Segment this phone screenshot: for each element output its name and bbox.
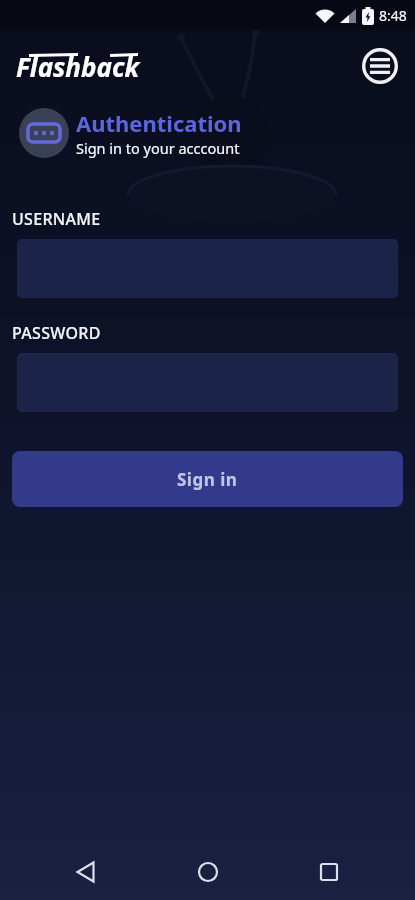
staticText: 8:48 xyxy=(379,6,407,25)
button[interactable] xyxy=(184,848,232,896)
staticText: USERNAME xyxy=(12,208,101,230)
staticText: Sign in xyxy=(177,468,238,491)
staticText: Authentication xyxy=(76,108,242,138)
button[interactable] xyxy=(305,848,353,896)
staticText: Sign in to your acccount xyxy=(76,138,240,158)
button[interactable] xyxy=(361,47,399,85)
staticText: PASSWORD xyxy=(12,322,101,344)
staticText: Flashback xyxy=(16,49,140,84)
button[interactable]: Sign in xyxy=(12,451,403,507)
button[interactable] xyxy=(62,848,110,896)
